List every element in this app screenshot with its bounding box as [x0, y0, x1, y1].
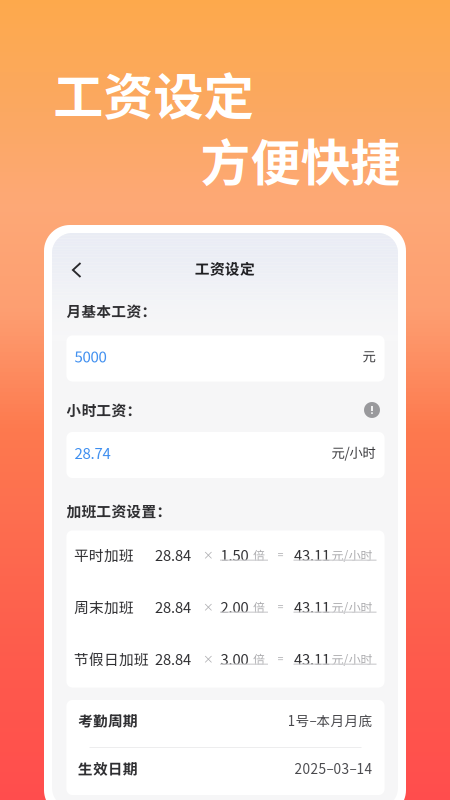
staticText: 节假日加班	[74, 648, 149, 669]
staticText: 1号–本月月底	[287, 710, 372, 730]
staticText: =	[277, 547, 283, 562]
staticText: 小时工资：	[66, 399, 141, 420]
staticText: 工资设定	[53, 57, 253, 129]
staticText: 43.11	[294, 648, 330, 669]
staticText: 28.74	[74, 442, 110, 463]
staticText: 元	[362, 346, 375, 365]
staticText: 28.84	[155, 648, 191, 669]
staticText: 考勤周期	[78, 709, 138, 731]
button[interactable]: 考勤周期	[66, 700, 384, 747]
staticText: =	[277, 599, 283, 614]
staticText: 5000	[74, 345, 106, 367]
staticText: 3.00	[220, 648, 248, 669]
staticText: 元/小时	[331, 650, 372, 667]
staticText: ×	[203, 547, 214, 562]
staticText: 1.50	[220, 544, 248, 565]
staticText: 工资设定	[195, 257, 255, 279]
staticText: 月基本工资：	[66, 300, 156, 321]
staticText: ×	[203, 599, 214, 614]
staticText: 平时加班	[74, 544, 134, 565]
button[interactable]: Back	[62, 250, 102, 292]
staticText: 元/小时	[331, 442, 375, 462]
staticText: 生效日期	[78, 757, 138, 779]
staticText: ×	[203, 651, 214, 666]
staticText: 倍	[253, 598, 265, 615]
staticText: 2025–03–14	[294, 758, 372, 778]
button[interactable]: 生效日期	[66, 748, 384, 795]
staticText: 倍	[253, 546, 265, 563]
staticText: 方便快捷	[200, 123, 400, 196]
staticText: 28.84	[155, 596, 191, 617]
staticText: 元/小时	[331, 546, 372, 563]
staticText: 28.84	[155, 544, 191, 565]
staticText: 加班工资设置：	[66, 500, 171, 521]
staticText: =	[277, 651, 283, 666]
staticText: 元/小时	[331, 598, 372, 615]
staticText: 周末加班	[74, 596, 134, 617]
staticText: 43.11	[294, 596, 330, 617]
staticText: 2.00	[220, 596, 248, 617]
staticText: 43.11	[294, 544, 330, 565]
staticText: 倍	[253, 650, 265, 667]
